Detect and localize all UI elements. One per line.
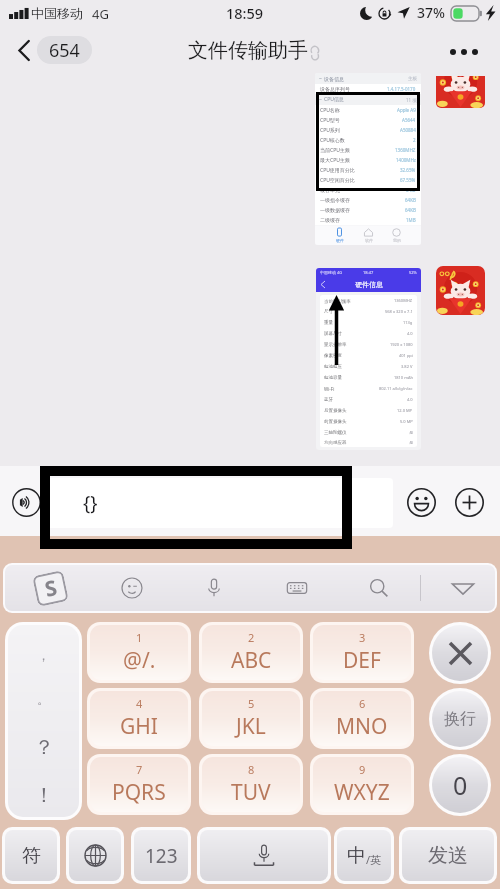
staticText: 硬件信息: [355, 280, 383, 289]
button[interactable]: More actions: [454, 487, 485, 518]
staticText: 11 项: [406, 97, 417, 103]
staticText: 缓存单元: [320, 187, 340, 193]
button[interactable]: Space: [200, 830, 328, 881]
button[interactable]: Back, 654 unread: [18, 33, 92, 67]
staticText: 我的: [393, 238, 401, 243]
staticText: 电池容量: [324, 375, 342, 381]
staticText: CPU系列: [320, 127, 340, 134]
staticText: 3.82 V: [401, 364, 413, 369]
staticText: 3: [359, 630, 366, 645]
staticText: 5: [248, 696, 255, 711]
staticText: CPU型号: [320, 117, 340, 124]
staticText: 802.11 a/b/g/n/ac: [379, 386, 413, 391]
button[interactable]: Voice input: [192, 565, 236, 611]
staticText: 1: [136, 630, 143, 645]
button[interactable]: {}: [46, 478, 393, 528]
staticText: DEF: [343, 646, 381, 675]
staticText: 显示分辨率: [324, 342, 347, 348]
staticText: 当前CPU频率: [324, 298, 351, 304]
staticText: Wi-Fi: [324, 386, 335, 392]
button[interactable]: More options: [442, 35, 486, 69]
button[interactable]: New line: [432, 691, 488, 747]
staticText: 前置摄像头: [324, 419, 347, 425]
staticText: 设备信息: [324, 76, 344, 82]
button[interactable]: 符: [5, 830, 57, 881]
staticText: 5.0 MP: [400, 419, 413, 424]
staticText: ABC: [231, 646, 272, 675]
staticText: 9: [359, 762, 366, 777]
staticText: 401 ppi: [399, 353, 413, 358]
staticText: 1MB: [406, 217, 416, 223]
button[interactable]: 123: [134, 830, 188, 881]
staticText: ！: [34, 783, 54, 808]
staticText: 1.4.17.5-0170: [387, 86, 416, 92]
staticText: 32.65%: [400, 167, 416, 173]
staticText: 软件: [365, 238, 373, 243]
staticText: 52%: [409, 270, 417, 275]
staticText: 654: [49, 38, 80, 63]
staticText: CPU使用百分比: [320, 167, 355, 174]
staticText: 中国移动 4G: [320, 270, 343, 275]
button[interactable]: Delete: [432, 625, 488, 681]
staticText: 一级数据缓存: [320, 207, 350, 213]
staticText: 蓝牙: [324, 397, 333, 403]
button[interactable]: Search: [357, 565, 401, 611]
button[interactable]: Hide keyboard: [440, 565, 486, 611]
staticText: 符: [22, 844, 41, 868]
staticText: 设备总序列号: [320, 86, 350, 92]
staticText: 换行: [444, 709, 476, 729]
button[interactable]: 7: [90, 757, 188, 812]
button[interactable]: Zero: [432, 757, 488, 813]
staticText: 。: [37, 691, 50, 707]
staticText: 尺寸: [324, 309, 333, 315]
staticText: CPU名称: [320, 107, 340, 114]
staticText: MNO: [336, 712, 388, 741]
staticText: 12.0 MP: [397, 408, 413, 413]
button[interactable]: 1: [90, 625, 188, 680]
button[interactable]: 2: [202, 625, 300, 680]
staticText: 4.0: [407, 331, 413, 336]
button[interactable]: 中英: [337, 830, 391, 881]
staticText: 6: [359, 696, 366, 711]
staticText: A50884: [400, 127, 416, 133]
staticText: 2: [413, 137, 416, 143]
button[interactable]: Switch language: [69, 830, 121, 881]
staticText: 568 x 320 x 7.1: [385, 309, 413, 314]
staticText: 最大CPU主频: [320, 157, 350, 164]
button[interactable]: Voice input: [11, 487, 42, 518]
staticText: CPU信息: [324, 96, 344, 103]
staticText: JKL: [236, 712, 266, 741]
staticText: A5644: [402, 117, 416, 123]
button[interactable]: 5: [202, 691, 300, 746]
button[interactable]: Emoji: [406, 487, 437, 518]
staticText: TUV: [231, 778, 271, 807]
staticText: 二级缓存: [320, 217, 340, 223]
button[interactable]: 6: [313, 691, 411, 746]
staticText: WXYZ: [334, 778, 390, 807]
staticText: 4G: [92, 5, 109, 23]
button[interactable]: 3: [313, 625, 411, 680]
button[interactable]: 4: [90, 691, 188, 746]
staticText: /英: [366, 852, 382, 867]
button[interactable]: 发送: [402, 830, 494, 881]
staticText: 三轴陀螺仪: [324, 430, 347, 436]
staticText: CPU核心数: [320, 137, 345, 144]
staticText: 7: [136, 762, 143, 777]
button[interactable]: Keyboard layout: [275, 565, 319, 611]
button[interactable]: 8: [202, 757, 300, 812]
staticText: 是: [409, 440, 413, 445]
staticText: ~: [319, 96, 322, 103]
staticText: 123: [145, 843, 178, 869]
staticText: 2: [248, 630, 255, 645]
staticText: 文件传输助手: [188, 38, 308, 63]
button[interactable]: Sogou input method: [15, 565, 85, 611]
button[interactable]: Punctuation: [8, 625, 79, 817]
button[interactable]: Emoji: [110, 565, 154, 611]
button[interactable]: 9: [313, 757, 411, 812]
staticText: 是: [409, 430, 413, 435]
staticText: 后置摄像头: [324, 408, 347, 414]
staticText: 1400MHz: [396, 157, 416, 163]
staticText: 像素密度: [324, 353, 342, 359]
staticText: S: [42, 573, 60, 604]
staticText: 64KB: [405, 207, 416, 213]
